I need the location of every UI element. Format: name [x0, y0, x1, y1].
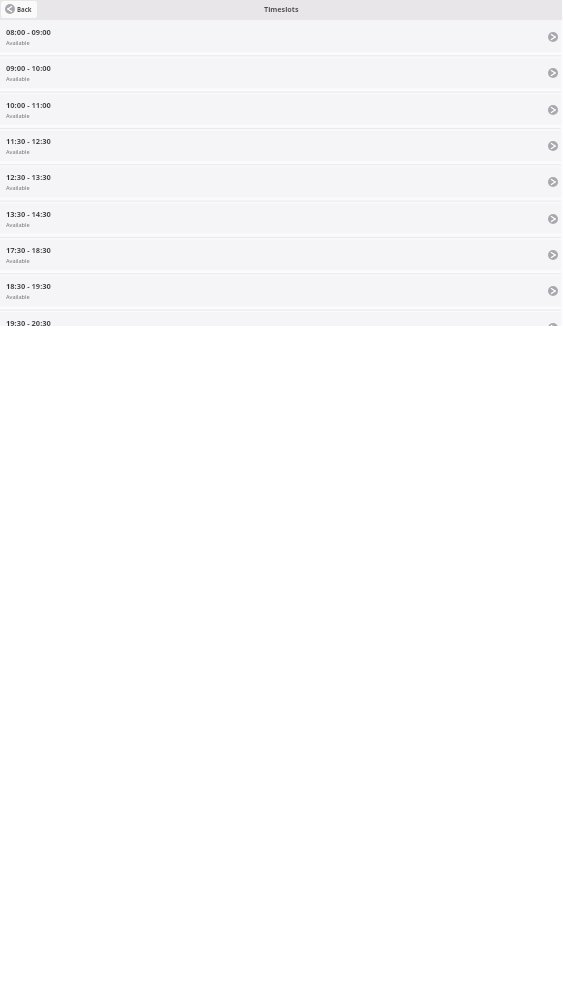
staticText: 09:00 - 10:00 [6, 63, 51, 73]
button[interactable]: 10:00 - 11:00 [0, 93, 563, 128]
staticText: Available [6, 221, 30, 229]
other: Back [5, 4, 15, 14]
staticText: 12:30 - 13:30 [6, 172, 51, 182]
other: Open 19:30 - 20:30 [548, 323, 558, 326]
button[interactable]: 12:30 - 13:30 [0, 165, 563, 200]
other: Open 09:00 - 10:00 [548, 68, 558, 78]
staticText: Available [6, 75, 30, 83]
button[interactable]: 11:30 - 12:30 [0, 129, 563, 164]
other: Open 08:00 - 09:00 [548, 32, 558, 42]
other: Open 11:30 - 12:30 [548, 141, 558, 151]
staticText: Available [6, 184, 30, 192]
staticText: 11:30 - 12:30 [6, 136, 51, 146]
other: Open 10:00 - 11:00 [548, 105, 558, 115]
staticText: 13:30 - 14:30 [6, 209, 51, 219]
staticText: Available [6, 293, 30, 301]
other: Open 13:30 - 14:30 [548, 214, 558, 224]
button[interactable]: 18:30 - 19:30 [0, 274, 563, 309]
staticText: 08:00 - 09:00 [6, 27, 51, 37]
staticText: Timeslots [264, 4, 299, 14]
button[interactable]: 17:30 - 18:30 [0, 238, 563, 273]
button[interactable]: 09:00 - 10:00 [0, 56, 563, 91]
staticText: Available [6, 257, 30, 265]
button[interactable]: 13:30 - 14:30 [0, 202, 563, 237]
staticText: 19:30 - 20:30 [6, 318, 51, 326]
button[interactable]: Back [1, 1, 37, 18]
staticText: 18:30 - 19:30 [6, 281, 51, 291]
staticText: 17:30 - 18:30 [6, 245, 51, 255]
other: Open 12:30 - 13:30 [548, 177, 558, 187]
button[interactable]: 19:30 - 20:30 [0, 311, 563, 326]
staticText: Available [6, 39, 30, 47]
staticText: 10:00 - 11:00 [6, 100, 51, 110]
staticText: Available [6, 112, 30, 120]
button[interactable]: 08:00 - 09:00 [0, 20, 563, 55]
staticText: Back [17, 5, 32, 13]
staticText: Available [6, 148, 30, 156]
other: Open 17:30 - 18:30 [548, 250, 558, 260]
other: Open 18:30 - 19:30 [548, 286, 558, 296]
